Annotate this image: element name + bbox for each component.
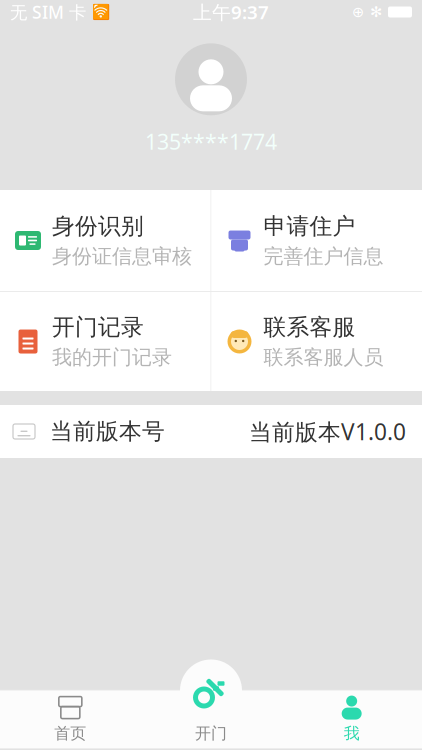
staticText: ✻ (370, 4, 382, 20)
staticText: 无 SIM 卡 (10, 0, 86, 23)
button[interactable]: 身份识别 (0, 190, 210, 291)
button[interactable]: 首页 (0, 690, 141, 748)
button[interactable]: 开门记录 (0, 292, 210, 391)
staticText: 完善住户信息 (263, 244, 383, 269)
staticText: 联系客服人员 (263, 345, 383, 370)
staticText: 开门记录 (52, 313, 144, 341)
staticText: 🛜 (92, 4, 110, 20)
staticText: 当前版本V1.0.0 (249, 416, 406, 446)
staticText: 上午9:37 (193, 0, 269, 24)
staticText: 首页 (54, 724, 86, 743)
staticText: 我 (344, 724, 360, 743)
staticText: 当前版本号 (50, 418, 165, 445)
staticText: 135****1774 (145, 127, 277, 156)
staticText: 我的开门记录 (52, 345, 172, 370)
staticText: 身份证信息审核 (52, 244, 192, 269)
button[interactable]: 当前版本号 (0, 405, 422, 458)
staticText: 开门 (195, 724, 227, 743)
button[interactable]: 开门 (180, 659, 242, 721)
button[interactable]: 联系客服 (211, 292, 422, 391)
button[interactable]: 我 (281, 690, 422, 748)
staticText: 身份识别 (52, 212, 144, 240)
button[interactable]: 申请住户 (211, 190, 422, 291)
staticText: ⊕ (352, 4, 364, 20)
staticText: 联系客服 (263, 313, 355, 341)
button[interactable]: 开门 (141, 690, 281, 748)
staticText: 申请住户 (263, 212, 355, 240)
